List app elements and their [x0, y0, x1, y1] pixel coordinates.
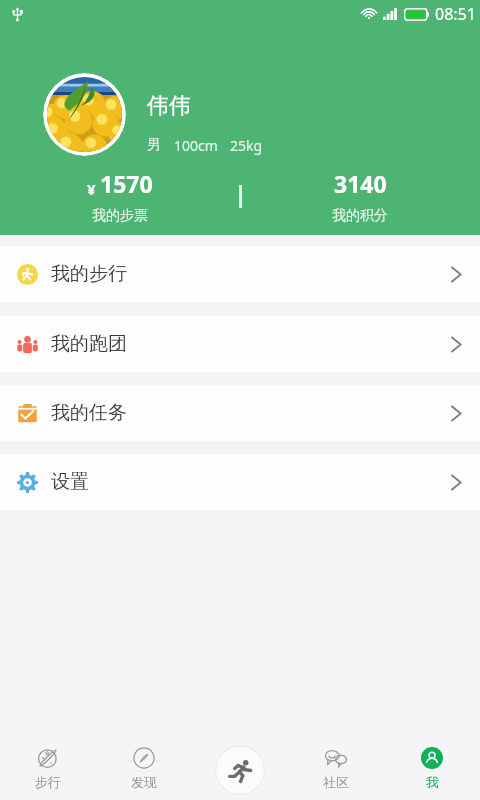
button[interactable]: 设置	[0, 454, 480, 510]
staticText: ¥	[87, 179, 96, 199]
staticText: 发现	[131, 774, 157, 790]
staticText: 男	[147, 136, 161, 154]
staticText: 我的步票	[92, 207, 148, 225]
button[interactable]: 我	[384, 736, 480, 800]
staticText: 我	[426, 774, 439, 790]
button[interactable]: 我的任务	[0, 385, 480, 441]
staticText: 1570	[100, 168, 153, 199]
staticText: 100cm	[174, 136, 218, 155]
staticText: 社区	[323, 774, 349, 790]
button[interactable]: 发现	[96, 736, 192, 800]
button[interactable]: 我的跑团	[0, 316, 480, 372]
staticText: 我的跑团	[51, 332, 127, 356]
button[interactable]: 3140	[240, 167, 480, 225]
button[interactable]: 社区	[288, 736, 384, 800]
staticText: 25kg	[230, 136, 263, 155]
staticText: 伟伟	[147, 92, 191, 120]
button[interactable]: 我的步行	[0, 246, 480, 302]
button[interactable]: ¥	[0, 167, 240, 225]
staticText: 设置	[51, 470, 89, 494]
staticText: 我的积分	[332, 207, 388, 225]
staticText: 3140	[334, 168, 387, 199]
staticText: 08:51	[435, 3, 476, 25]
button[interactable]: 步行	[0, 736, 96, 800]
button[interactable]: 头像	[43, 73, 126, 156]
staticText: 步行	[35, 774, 61, 790]
staticText: 我的步行	[51, 262, 127, 286]
staticText: 我的任务	[51, 401, 127, 425]
button[interactable]: 开始跑步	[215, 745, 265, 795]
button[interactable]: 伟伟	[147, 92, 263, 155]
